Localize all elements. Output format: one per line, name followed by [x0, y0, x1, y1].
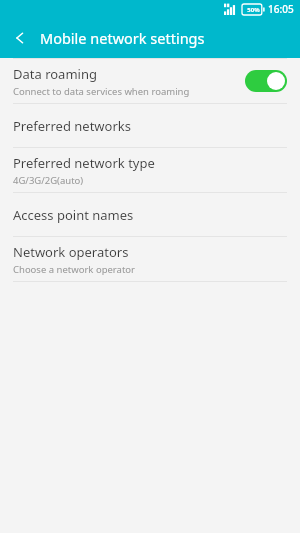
- staticText: Preferred networks: [13, 117, 131, 135]
- staticText: 50%: [247, 6, 260, 14]
- staticText: Access point names: [13, 206, 134, 224]
- staticText: Choose a network operator: [13, 263, 135, 276]
- staticText: Preferred network type: [13, 154, 155, 172]
- staticText: Data roaming: [13, 65, 97, 83]
- staticText: 16:05: [268, 2, 294, 16]
- button[interactable]: Network operators: [0, 237, 300, 281]
- button[interactable]: Preferred network type: [0, 148, 300, 192]
- button[interactable]: Data roaming toggle: [245, 70, 287, 92]
- button[interactable]: Access point names: [0, 193, 300, 236]
- button[interactable]: Back: [0, 18, 40, 58]
- staticText: 4G/3G/2G(auto): [13, 174, 84, 187]
- button[interactable]: Data roaming: [0, 59, 300, 103]
- button[interactable]: Preferred networks: [0, 104, 300, 147]
- staticText: Mobile network settings: [40, 28, 205, 48]
- staticText: Network operators: [13, 243, 129, 261]
- staticText: Connect to data services when roaming: [13, 85, 190, 98]
